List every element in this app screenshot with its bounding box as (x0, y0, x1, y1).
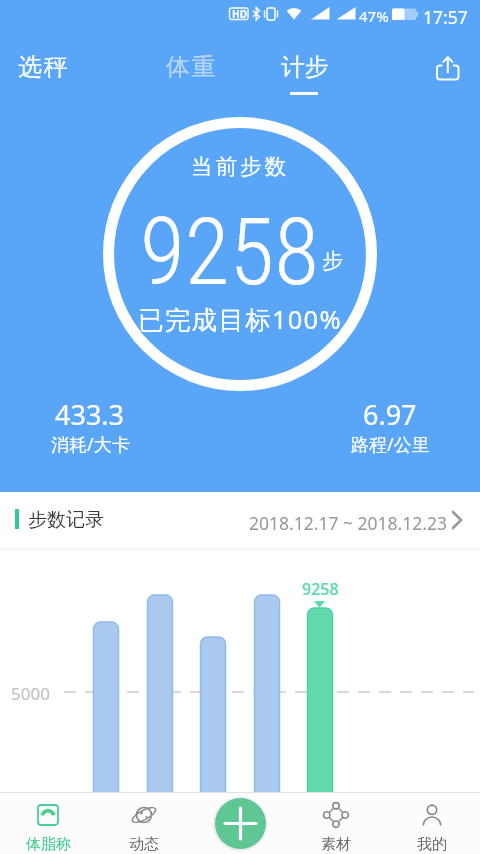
staticText: 我的 (417, 835, 447, 854)
staticText: 选秤 (18, 52, 69, 82)
staticText: 17:57 (423, 5, 468, 29)
staticText: 9258 (140, 199, 319, 307)
button[interactable]: 步数记录 (0, 492, 480, 554)
button[interactable] (215, 798, 266, 849)
staticText: 6.97 (363, 396, 417, 433)
staticText: 已完成目标100% (138, 302, 342, 337)
button[interactable]: 体重 (166, 52, 217, 82)
staticText: 5000 (11, 682, 50, 705)
staticText: 消耗/大卡 (51, 432, 130, 457)
staticText: 步 (322, 248, 343, 274)
button[interactable]: 选秤 (18, 52, 69, 82)
button[interactable] (430, 48, 466, 84)
staticText: 路程/公里 (351, 432, 430, 457)
staticText: 当前步数 (191, 153, 290, 180)
staticText: 素材 (321, 835, 351, 854)
staticText: 步数记录 (28, 508, 104, 532)
staticText: 433.3 (55, 396, 125, 433)
button[interactable]: 动态 (96, 792, 192, 854)
staticText: 动态 (129, 835, 159, 854)
button[interactable]: 素材 (288, 792, 384, 854)
button[interactable]: 计步 (281, 52, 329, 82)
staticText: 47% (359, 6, 389, 26)
staticText: 体重 (166, 52, 217, 82)
staticText: HD (232, 7, 247, 21)
button[interactable]: 体脂称 (0, 792, 96, 854)
button[interactable]: 我的 (384, 792, 480, 854)
staticText: 计步 (281, 52, 329, 82)
staticText: 9258 (302, 578, 339, 600)
staticText: 体脂称 (26, 835, 71, 854)
staticText: 2018.12.17 ~ 2018.12.23 (249, 511, 448, 535)
